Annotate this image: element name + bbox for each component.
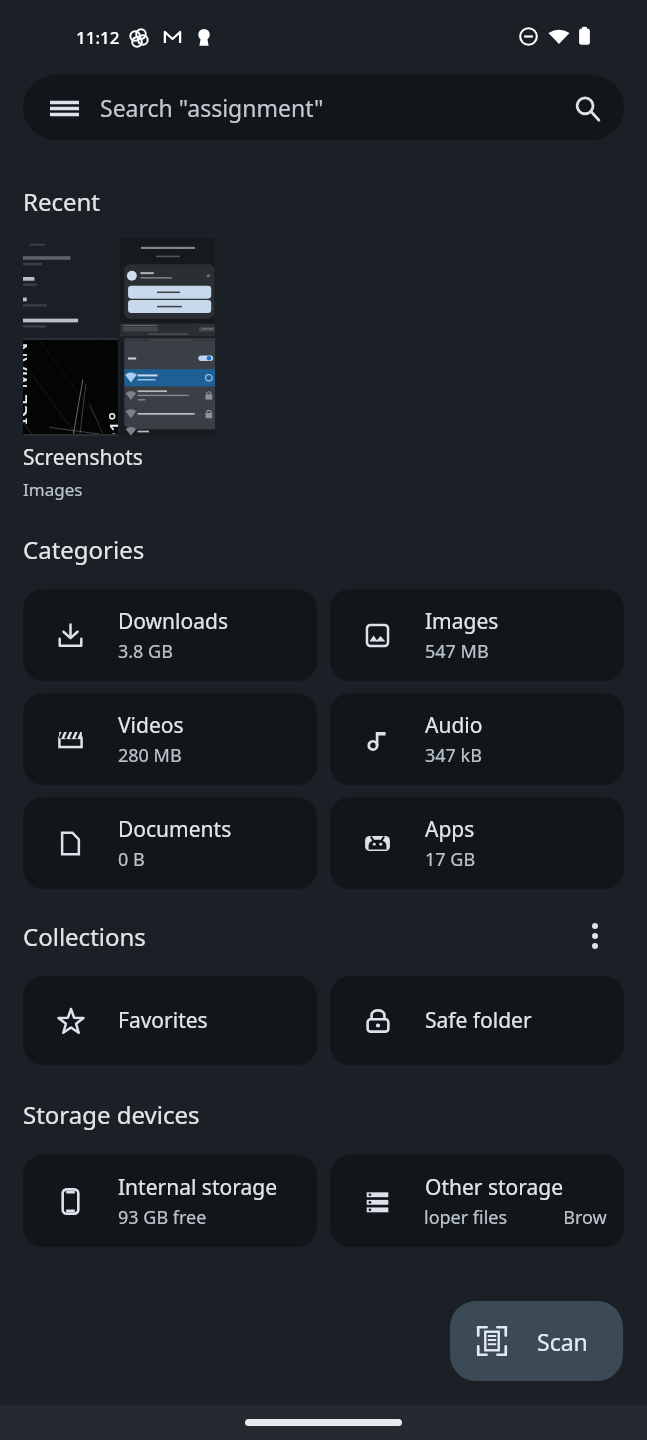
staticText: Images	[23, 478, 83, 501]
button[interactable]: Favorites	[23, 976, 317, 1065]
staticText: Downloads	[118, 607, 228, 636]
staticText: Images	[425, 607, 499, 636]
staticText: Collections	[23, 920, 146, 953]
staticText: 21°	[102, 411, 118, 434]
staticText: ICE MAN	[23, 342, 32, 424]
staticText: 11:12	[76, 26, 120, 49]
button[interactable]: Images	[330, 589, 624, 681]
staticText: Screenshots	[23, 443, 143, 472]
staticText: Audio	[425, 711, 483, 740]
button[interactable]: Other storage	[330, 1155, 624, 1247]
staticText: Internal storage	[118, 1173, 277, 1202]
staticText: 547 MB	[425, 639, 489, 664]
staticText: 3.8 GB	[118, 639, 173, 664]
button[interactable]: Apps	[330, 797, 624, 889]
staticText: Favorites	[118, 1006, 208, 1035]
staticText: Scan	[537, 1326, 588, 1357]
staticText: Apps	[425, 815, 475, 844]
staticText: Safe folder	[425, 1006, 532, 1035]
staticText: Videos	[118, 711, 184, 740]
staticText: Other storage	[425, 1173, 564, 1202]
staticText: Recent	[23, 185, 101, 218]
staticText: Storage devices	[23, 1098, 200, 1131]
staticText: Search "assignment"	[100, 92, 324, 123]
staticText: loper files Brow	[424, 1205, 607, 1229]
button[interactable]: Scan	[450, 1301, 623, 1381]
staticText: 0 B	[118, 847, 145, 872]
button[interactable]: Videos	[23, 693, 317, 785]
staticText: 93 GB free	[118, 1205, 207, 1230]
staticText: Documents	[118, 815, 232, 844]
button[interactable]: Internal storage	[23, 1155, 317, 1247]
staticText: Categories	[23, 533, 145, 566]
button[interactable]: Safe folder	[330, 976, 624, 1065]
button[interactable]: Audio	[330, 693, 624, 785]
button[interactable]: Search "assignment"	[23, 75, 624, 140]
button[interactable]: Downloads	[23, 589, 317, 681]
button[interactable]: Documents	[23, 797, 317, 889]
staticText: 347 kB	[425, 743, 482, 768]
staticText: 280 MB	[118, 743, 182, 768]
button[interactable]: More options	[571, 912, 619, 960]
staticText: 17 GB	[425, 847, 476, 872]
button[interactable]: ICE MAN	[23, 238, 215, 436]
